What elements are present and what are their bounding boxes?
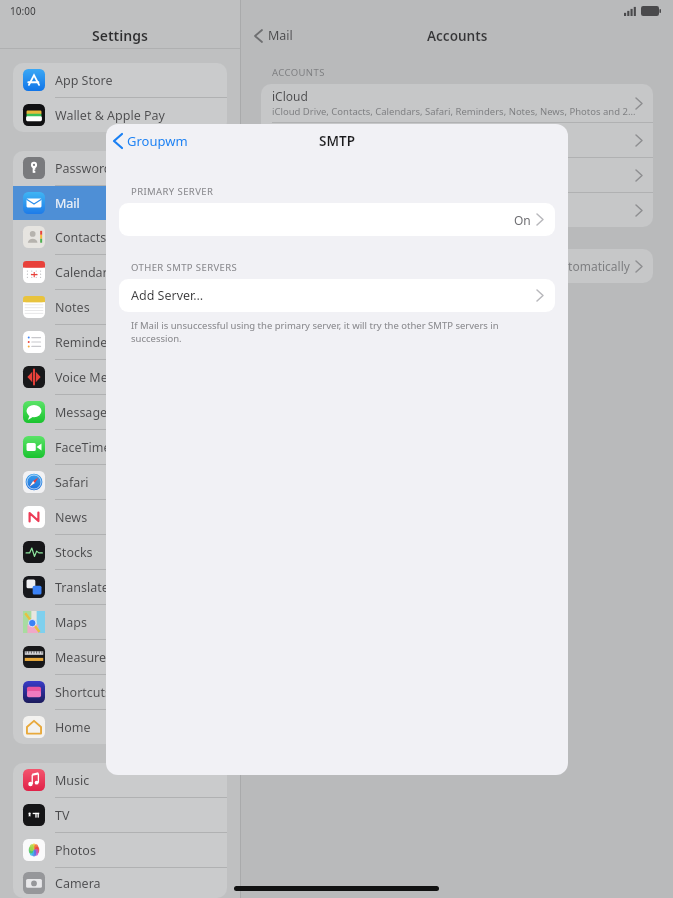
staticText: Mail bbox=[268, 27, 293, 44]
button[interactable]: Music bbox=[13, 763, 227, 797]
button[interactable]: On bbox=[119, 203, 555, 236]
staticText: Measure bbox=[55, 649, 107, 666]
staticText: Stocks bbox=[55, 544, 93, 561]
staticText: Groupwm bbox=[127, 132, 188, 150]
button[interactable]: Contacts bbox=[13, 220, 227, 254]
staticText: Settings bbox=[92, 26, 148, 45]
staticText: If Mail is unsuccessful using the primar… bbox=[131, 319, 543, 345]
staticText: Messages bbox=[55, 404, 114, 421]
staticText: Home bbox=[55, 719, 91, 736]
button[interactable] bbox=[261, 158, 653, 192]
staticText: Reminders bbox=[55, 334, 119, 351]
staticText: iCloud Drive, Contacts, Calendars, Safar… bbox=[272, 105, 636, 118]
button[interactable]: Maps bbox=[13, 605, 227, 639]
staticText: News bbox=[55, 509, 88, 526]
staticText: TV bbox=[55, 807, 70, 824]
staticText: OTHER SMTP SERVERS bbox=[131, 261, 238, 274]
button[interactable]: Camera bbox=[13, 868, 227, 898]
staticText: Calendar bbox=[55, 264, 108, 281]
button[interactable]: Automatically bbox=[261, 249, 653, 283]
staticText: On bbox=[514, 212, 531, 228]
button[interactable]: Shortcuts bbox=[13, 675, 227, 709]
staticText: Notes bbox=[55, 299, 90, 316]
staticText: Accounts bbox=[427, 27, 488, 45]
staticText: Safari bbox=[55, 474, 89, 491]
staticText: Contacts bbox=[55, 229, 107, 246]
button[interactable]: FaceTime bbox=[13, 430, 227, 464]
button[interactable]: Stocks bbox=[13, 535, 227, 569]
button[interactable]: TV bbox=[13, 798, 227, 832]
staticText: Shortcuts bbox=[55, 684, 112, 701]
button[interactable]: Messages bbox=[13, 395, 227, 429]
button[interactable]: Reminders bbox=[13, 325, 227, 359]
button[interactable]: Measure bbox=[13, 640, 227, 674]
staticText: ACCOUNTS bbox=[272, 66, 325, 79]
staticText: Music bbox=[55, 772, 90, 789]
button[interactable] bbox=[261, 193, 653, 227]
button[interactable]: Passwords bbox=[13, 151, 227, 185]
staticText: Camera bbox=[55, 875, 101, 892]
button[interactable]: Home bbox=[13, 710, 227, 744]
button[interactable]: Voice Memos bbox=[13, 360, 227, 394]
button[interactable]: Add Server… bbox=[119, 279, 555, 312]
staticText: Passwords bbox=[55, 160, 118, 177]
button[interactable]: Calendar bbox=[13, 255, 227, 289]
staticText: Add Server… bbox=[131, 287, 204, 304]
staticText: FaceTime bbox=[55, 439, 111, 456]
staticText: PRIMARY SERVER bbox=[131, 185, 214, 198]
button[interactable]: Safari bbox=[13, 465, 227, 499]
staticText: Mail bbox=[55, 195, 80, 212]
button[interactable]: Groupwm bbox=[114, 132, 188, 150]
staticText: App Store bbox=[55, 72, 113, 89]
button[interactable]: Mail bbox=[255, 27, 293, 44]
button[interactable]: App Store bbox=[13, 63, 227, 97]
staticText: Photos bbox=[55, 842, 96, 859]
button[interactable] bbox=[261, 123, 653, 157]
staticText: Automatically bbox=[553, 258, 630, 274]
button[interactable]: Photos bbox=[13, 833, 227, 867]
staticText: Wallet & Apple Pay bbox=[55, 107, 165, 124]
staticText: Voice Memos bbox=[55, 369, 133, 386]
button[interactable]: iCloud bbox=[261, 84, 653, 122]
staticText: Translate bbox=[55, 579, 109, 596]
button[interactable]: Translate bbox=[13, 570, 227, 604]
staticText: Maps bbox=[55, 614, 88, 631]
button[interactable]: Wallet & Apple Pay bbox=[13, 98, 227, 132]
button[interactable]: Notes bbox=[13, 290, 227, 324]
button[interactable]: News bbox=[13, 500, 227, 534]
button[interactable]: Mail bbox=[13, 186, 227, 220]
staticText: SMTP bbox=[319, 132, 355, 150]
staticText: 10:00 bbox=[10, 4, 36, 18]
staticText: iCloud bbox=[272, 88, 308, 104]
